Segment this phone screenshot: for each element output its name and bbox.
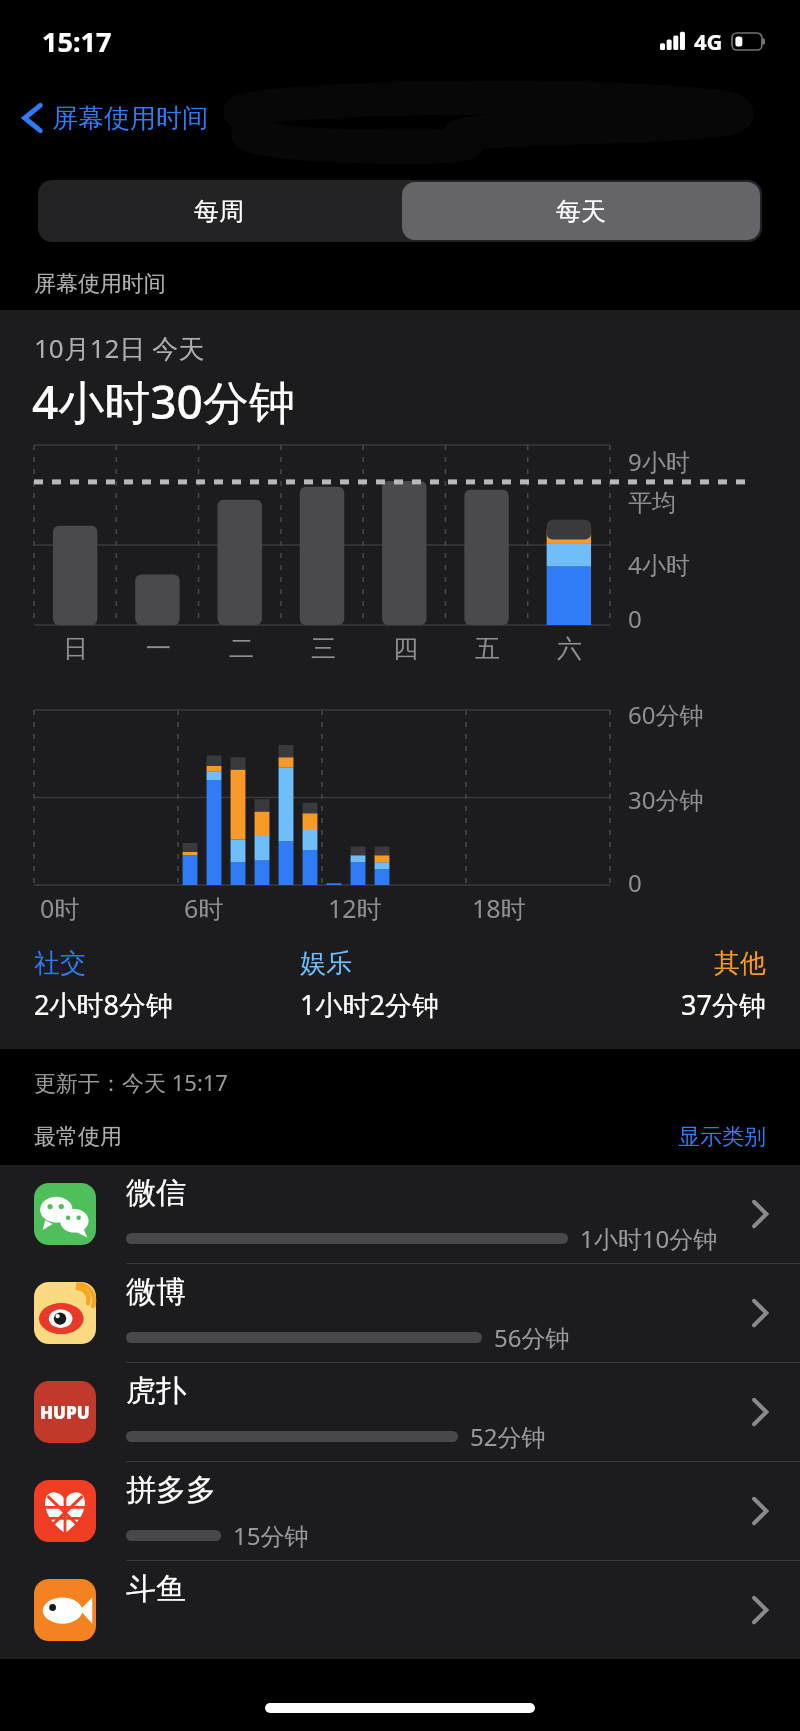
button[interactable]: 微博 [0, 1264, 800, 1362]
staticText: 微信 [126, 1174, 186, 1212]
staticText: 52分钟 [470, 1420, 546, 1453]
staticText: 56分钟 [494, 1321, 570, 1354]
staticText: 2小时8分钟 [34, 986, 300, 1023]
staticText: 12时 [328, 891, 382, 925]
button[interactable]: HUPU [0, 1363, 800, 1461]
other: Open 微信 [750, 1197, 770, 1231]
staticText: 30分钟 [628, 783, 704, 816]
button[interactable]: 每天 [402, 182, 760, 240]
staticText: 60分钟 [628, 698, 704, 731]
button[interactable]: 斗鱼 [0, 1561, 800, 1659]
staticText: 屏幕使用时间 [52, 102, 208, 135]
staticText: 0时 [40, 891, 80, 925]
staticText: 娱乐 [300, 947, 566, 980]
staticText: HUPU [40, 1401, 90, 1424]
other: Open 虎扑 [750, 1395, 770, 1429]
staticText: 拼多多 [126, 1471, 216, 1509]
button[interactable]: Back [20, 100, 208, 136]
staticText: 微博 [126, 1273, 186, 1311]
staticText: 显示类别 [678, 1123, 766, 1151]
staticText: 五 [475, 633, 500, 664]
staticText: 0 [628, 866, 642, 899]
staticText: 日 [63, 633, 88, 664]
staticText: 屏幕使用时间 [34, 270, 166, 298]
staticText: 斗鱼 [126, 1570, 186, 1608]
staticText: 0 [628, 602, 642, 635]
staticText: 社交 [34, 947, 300, 980]
staticText: 6时 [184, 891, 224, 925]
staticText: 1小时2分钟 [300, 986, 566, 1023]
staticText: 4小时 [628, 548, 690, 581]
staticText: 37分钟 [566, 986, 766, 1023]
staticText: 15分钟 [233, 1519, 309, 1552]
other: Open 斗鱼 [750, 1593, 770, 1627]
staticText: 一 [146, 633, 171, 664]
staticText: 每天 [556, 196, 606, 227]
staticText: 二 [229, 633, 254, 664]
other: Back [20, 100, 46, 136]
staticText: 10月12日 今天 [34, 330, 205, 366]
staticText: 4G [694, 26, 723, 56]
button[interactable]: 显示类别 [678, 1123, 766, 1151]
button[interactable]: 每周 [38, 180, 400, 242]
other: Open 微博 [750, 1296, 770, 1330]
other: Open 拼多多 [750, 1494, 770, 1528]
staticText: 15:17 [42, 23, 112, 60]
staticText: 9小时 [628, 445, 690, 478]
staticText: 四 [393, 633, 418, 664]
button[interactable]: 微信 [0, 1165, 800, 1263]
staticText: 三 [311, 633, 336, 664]
staticText: 其他 [566, 947, 766, 980]
button[interactable]: 拼多多 [0, 1462, 800, 1560]
staticText: 18时 [472, 891, 526, 925]
staticText: 4小时30分钟 [32, 370, 295, 433]
staticText: 最常使用 [34, 1123, 122, 1151]
staticText: 每周 [194, 196, 244, 227]
staticText: 虎扑 [126, 1372, 186, 1410]
staticText: 1小时10分钟 [580, 1222, 718, 1255]
staticText: 平均 [628, 488, 676, 518]
staticText: 六 [557, 633, 582, 664]
staticText: 更新于：今天 15:17 [34, 1067, 228, 1097]
